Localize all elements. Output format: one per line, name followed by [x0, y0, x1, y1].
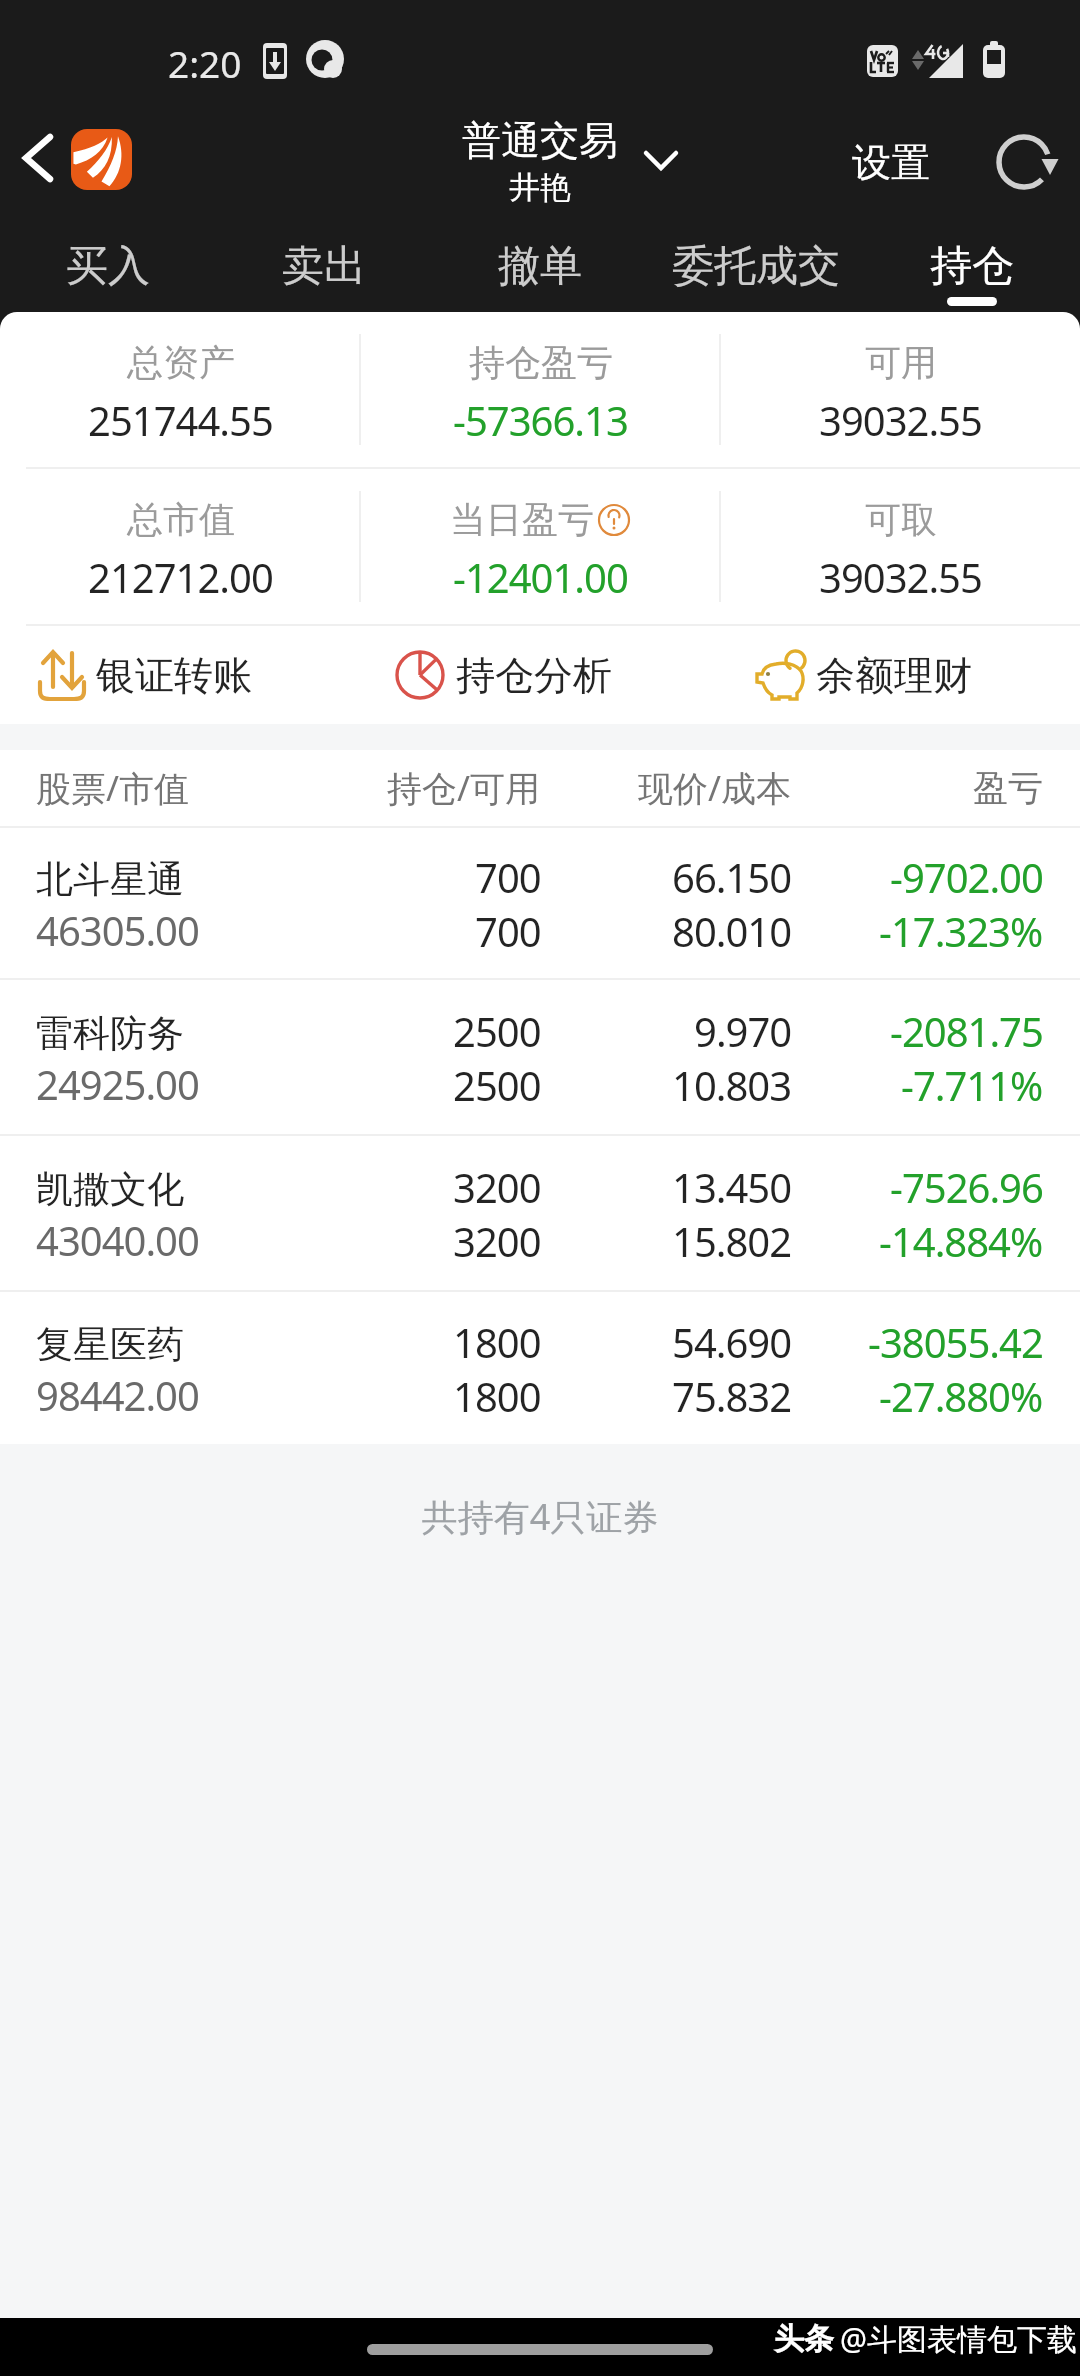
staticText: 总资产 [127, 340, 235, 385]
button[interactable]: 设置 [852, 138, 930, 187]
staticText: 700 [475, 850, 541, 904]
staticText: 盈亏 [973, 766, 1043, 810]
button[interactable]: 委托成交 [648, 220, 864, 312]
staticText: 银证转账 [96, 651, 252, 700]
button[interactable]: 东方财富 [71, 129, 132, 190]
button[interactable]: 刷新 [979, 117, 1069, 207]
staticText: 75.832 [672, 1369, 792, 1423]
staticText: -9702.00 [890, 850, 1043, 904]
staticText: 可取 [865, 497, 937, 542]
staticText: -57366.13 [453, 393, 628, 447]
button[interactable]: 普通交易 [340, 116, 740, 207]
staticText: 共持有4只证券 [0, 1492, 1080, 1541]
staticText: 54.690 [672, 1315, 792, 1369]
button[interactable]: 余额理财 [720, 626, 1080, 724]
staticText: 13.450 [672, 1160, 792, 1214]
button[interactable]: 切换账户 [636, 136, 686, 186]
staticText: 卖出 [282, 240, 366, 293]
staticText: 2500 [453, 1004, 541, 1058]
staticText: 可用 [865, 340, 937, 385]
staticText: -7.711% [901, 1058, 1043, 1112]
button[interactable]: 卖出 [216, 220, 432, 312]
staticText: -7526.96 [890, 1160, 1043, 1214]
staticText: 80.010 [672, 904, 792, 958]
staticText: -17.323% [879, 904, 1043, 958]
staticText: -2081.75 [890, 1004, 1043, 1058]
staticText: 46305.00 [36, 903, 199, 957]
button[interactable]: 持仓分析 [360, 626, 720, 724]
staticText: -12401.00 [453, 550, 628, 604]
staticText: 井艳 [509, 168, 571, 207]
staticText: 3200 [453, 1160, 541, 1214]
staticText: 251744.55 [88, 393, 273, 447]
staticText: 98442.00 [36, 1368, 199, 1422]
staticText: 2:20 [168, 38, 242, 88]
staticText: 39032.55 [819, 550, 982, 604]
staticText: 复星医药 [36, 1321, 184, 1368]
staticText: -14.884% [879, 1214, 1043, 1268]
staticText: 43040.00 [36, 1213, 199, 1267]
staticText: 北斗星通 [36, 856, 184, 903]
staticText: 当日盈亏 [450, 497, 594, 542]
button[interactable]: 买入 [0, 220, 216, 312]
staticText: 1800 [453, 1369, 541, 1423]
staticText: 普通交易 [462, 116, 618, 165]
staticText: 持仓 [930, 240, 1014, 293]
staticText: -38055.42 [868, 1315, 1043, 1369]
staticText: -27.880% [879, 1369, 1043, 1423]
staticText: 头条 [774, 2320, 834, 2358]
staticText: 余额理财 [816, 651, 972, 700]
staticText: 2500 [453, 1058, 541, 1112]
staticText: @斗图表情包下载 [840, 2318, 1077, 2359]
staticText: 10.803 [672, 1058, 792, 1112]
staticText: 持仓分析 [456, 651, 612, 700]
staticText: 撤单 [498, 240, 582, 293]
button[interactable]: 北斗星通 [0, 828, 1080, 978]
staticText: 1800 [453, 1315, 541, 1369]
staticText: 现价/成本 [638, 764, 792, 812]
staticText: 委托成交 [672, 240, 840, 293]
staticText: 212712.00 [88, 550, 273, 604]
staticText: 700 [475, 904, 541, 958]
button[interactable]: 返回 [8, 128, 68, 188]
button[interactable]: 银证转账 [0, 626, 360, 724]
staticText: 总市值 [127, 497, 235, 542]
staticText: 股票/市值 [36, 764, 190, 812]
button[interactable]: 持仓 [864, 220, 1080, 312]
button[interactable]: 撤单 [432, 220, 648, 312]
staticText: 39032.55 [819, 393, 982, 447]
staticText: 持仓/可用 [387, 764, 541, 812]
staticText: 9.970 [694, 1004, 792, 1058]
staticText: 雷科防务 [36, 1010, 184, 1057]
staticText: 3200 [453, 1214, 541, 1268]
staticText: 持仓盈亏 [469, 340, 613, 385]
button[interactable]: 复星医药 [0, 1292, 1080, 1444]
staticText: 15.802 [672, 1214, 792, 1268]
button[interactable]: 凯撒文化 [0, 1136, 1080, 1290]
button[interactable]: 雷科防务 [0, 980, 1080, 1134]
staticText: 24925.00 [36, 1057, 199, 1111]
staticText: 66.150 [672, 850, 792, 904]
staticText: 设置 [852, 138, 930, 187]
staticText: 凯撒文化 [36, 1166, 184, 1213]
staticText: 买入 [66, 240, 150, 293]
